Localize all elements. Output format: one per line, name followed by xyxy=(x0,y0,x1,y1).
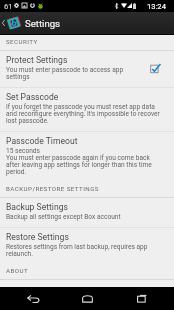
button[interactable]: Recent apps xyxy=(120,287,164,310)
button[interactable]: Back xyxy=(11,287,55,310)
button[interactable]: Protect Settings xyxy=(0,51,174,87)
staticText: 13:24 xyxy=(147,2,166,11)
staticText: Protect Settings xyxy=(6,55,68,65)
button[interactable]: Restore Settings xyxy=(0,228,174,264)
button[interactable]: Protect Settings checkbox xyxy=(149,62,161,74)
staticText: Restore Settings xyxy=(6,232,69,242)
staticText: BACKUP/RESTORE SETTINGS xyxy=(6,185,99,192)
button[interactable]: Passcode Timeout xyxy=(0,132,174,182)
staticText: Set Passcode xyxy=(6,92,59,102)
button[interactable]: Navigate up xyxy=(0,12,7,34)
staticText: ABOUT xyxy=(6,267,29,274)
button[interactable]: Backup Settings xyxy=(0,198,174,227)
staticText: Settings xyxy=(25,18,61,29)
button[interactable]: Home xyxy=(65,287,109,310)
button[interactable]: Set Passcode xyxy=(0,88,174,131)
staticText: You must enter passcode to access app se… xyxy=(6,66,137,80)
staticText: Passcode Timeout xyxy=(6,136,78,146)
staticText: SECURITY xyxy=(6,38,38,45)
staticText: 15 seconds You must enter passcode again… xyxy=(6,147,160,175)
staticText: Backup all settings except Box account xyxy=(6,213,121,220)
staticText: If you forget the passcode you must rese… xyxy=(6,103,160,124)
staticText: Restores settings from last backup, requ… xyxy=(6,243,160,257)
staticText: 61 xyxy=(4,2,13,11)
staticText: Backup Settings xyxy=(6,202,68,212)
